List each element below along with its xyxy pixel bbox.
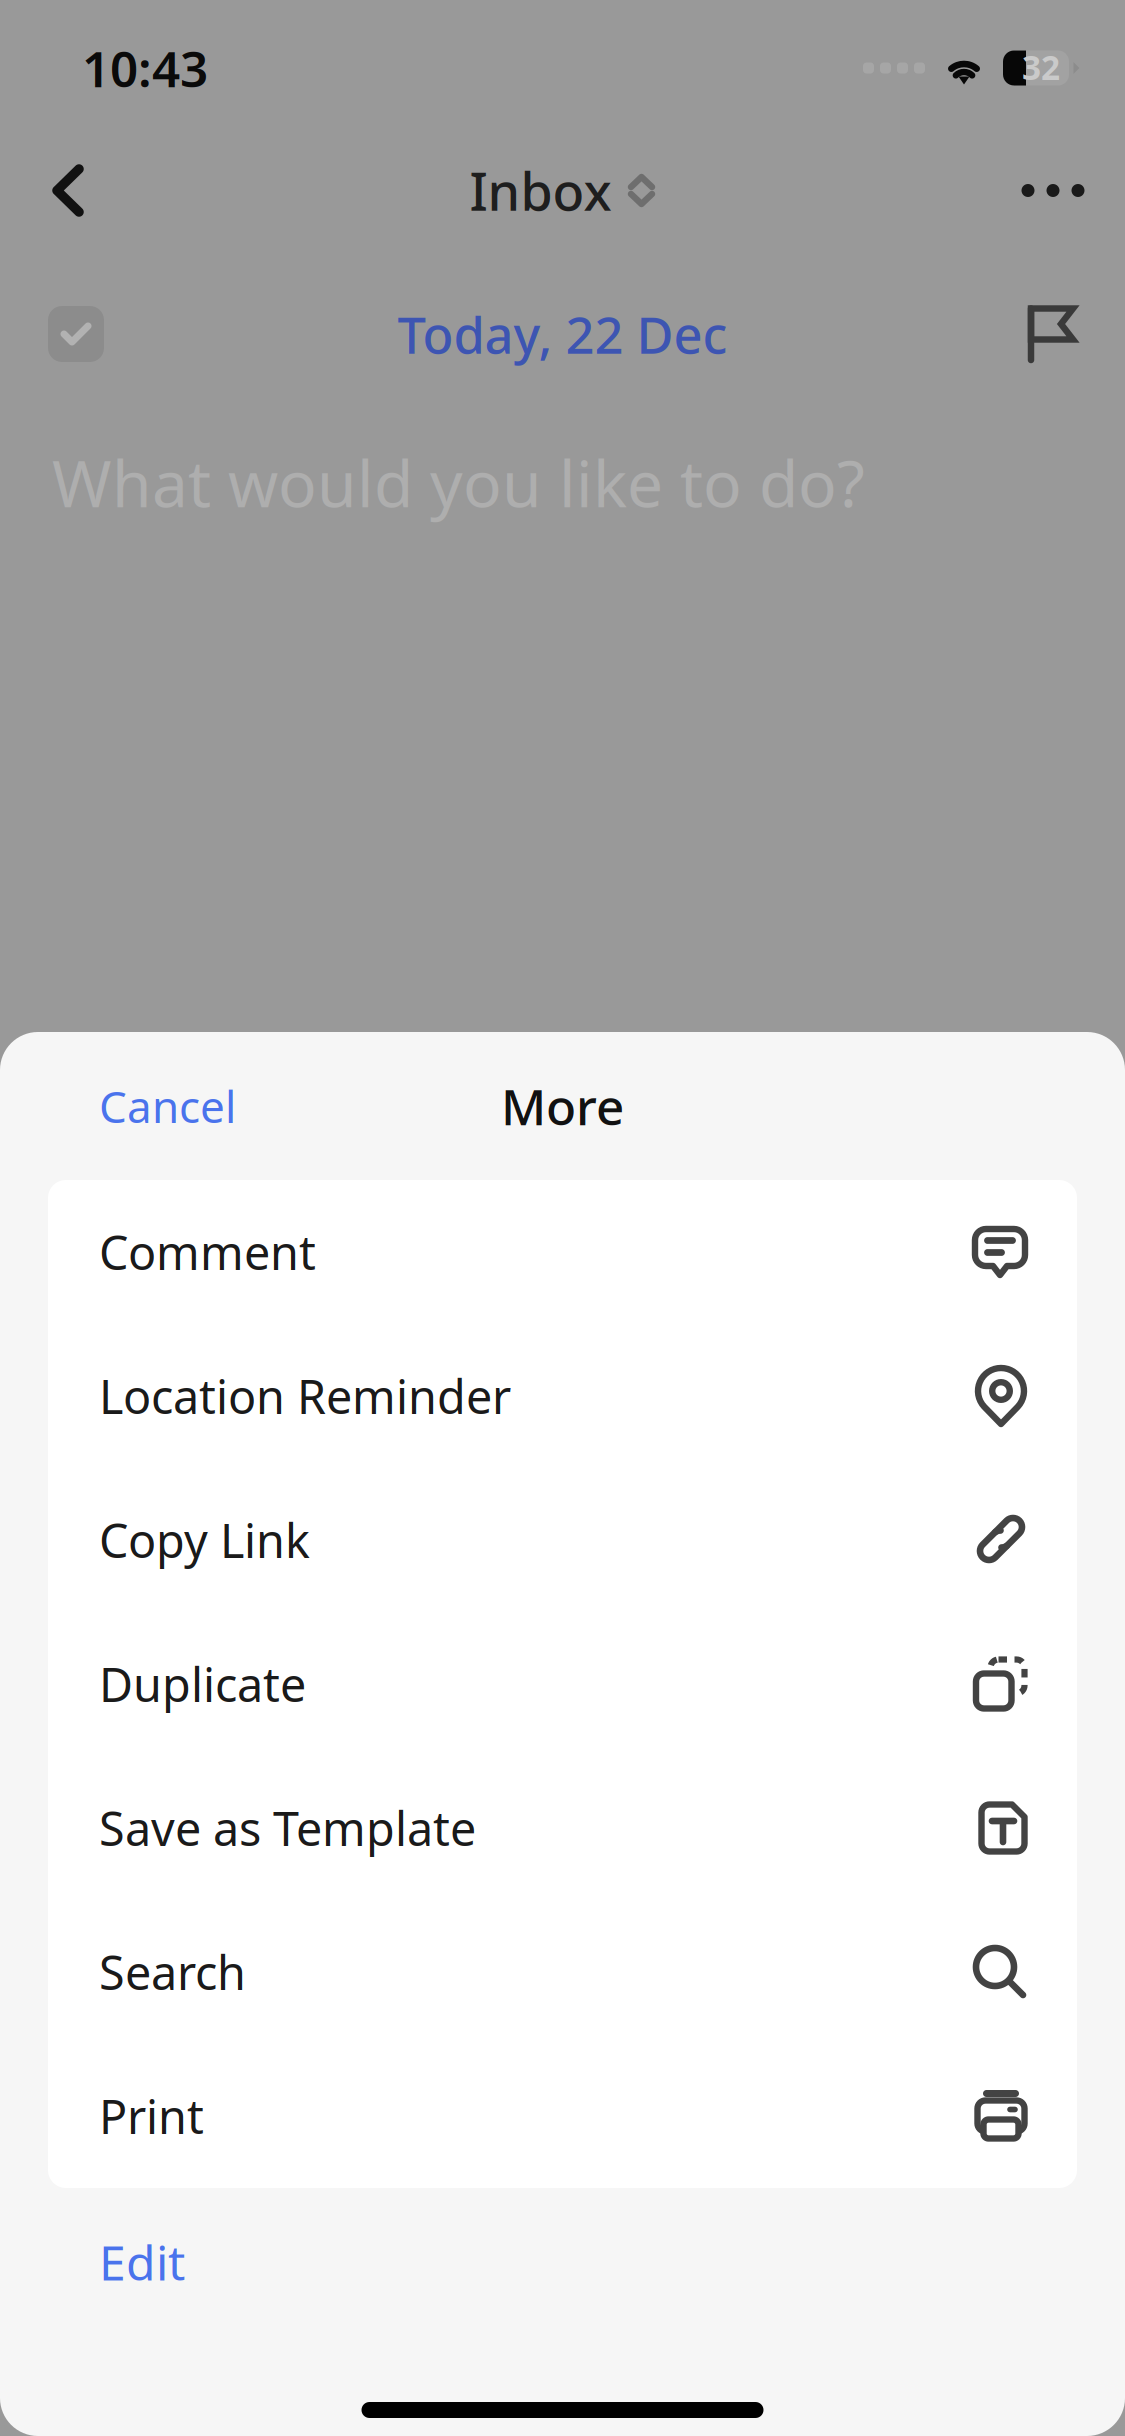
staticText: Search — [99, 1941, 246, 2003]
staticText: Today, 22 Dec — [397, 300, 727, 368]
button[interactable]: Location Reminder — [48, 1324, 1077, 1468]
button[interactable]: Print — [48, 2044, 1077, 2188]
button[interactable]: Search — [48, 1900, 1077, 2044]
staticText: Cancel — [99, 1077, 236, 1135]
staticText: Print — [99, 2085, 204, 2147]
staticText: Save as Template — [99, 1797, 476, 1859]
staticText: Inbox — [469, 156, 611, 225]
button[interactable]: Edit — [77, 2216, 207, 2308]
staticText: Copy Link — [99, 1509, 310, 1571]
button[interactable]: Comment — [48, 1180, 1077, 1324]
staticText: Location Reminder — [99, 1365, 511, 1427]
button[interactable]: Duplicate — [48, 1612, 1077, 1756]
staticText: Edit — [99, 2230, 185, 2294]
staticText: Duplicate — [99, 1653, 306, 1715]
staticText: Comment — [99, 1221, 316, 1283]
button[interactable]: More options — [1001, 135, 1105, 245]
button[interactable]: Copy Link — [48, 1468, 1077, 1612]
button[interactable]: Cancel — [77, 1061, 258, 1151]
button[interactable]: Save as Template — [48, 1756, 1077, 1900]
staticText: 32 — [1022, 45, 1060, 89]
button[interactable]: Back — [20, 135, 116, 245]
staticText: 10:43 — [82, 35, 208, 101]
staticText: More — [501, 1073, 624, 1139]
staticText: What would you like to do? — [52, 440, 865, 525]
